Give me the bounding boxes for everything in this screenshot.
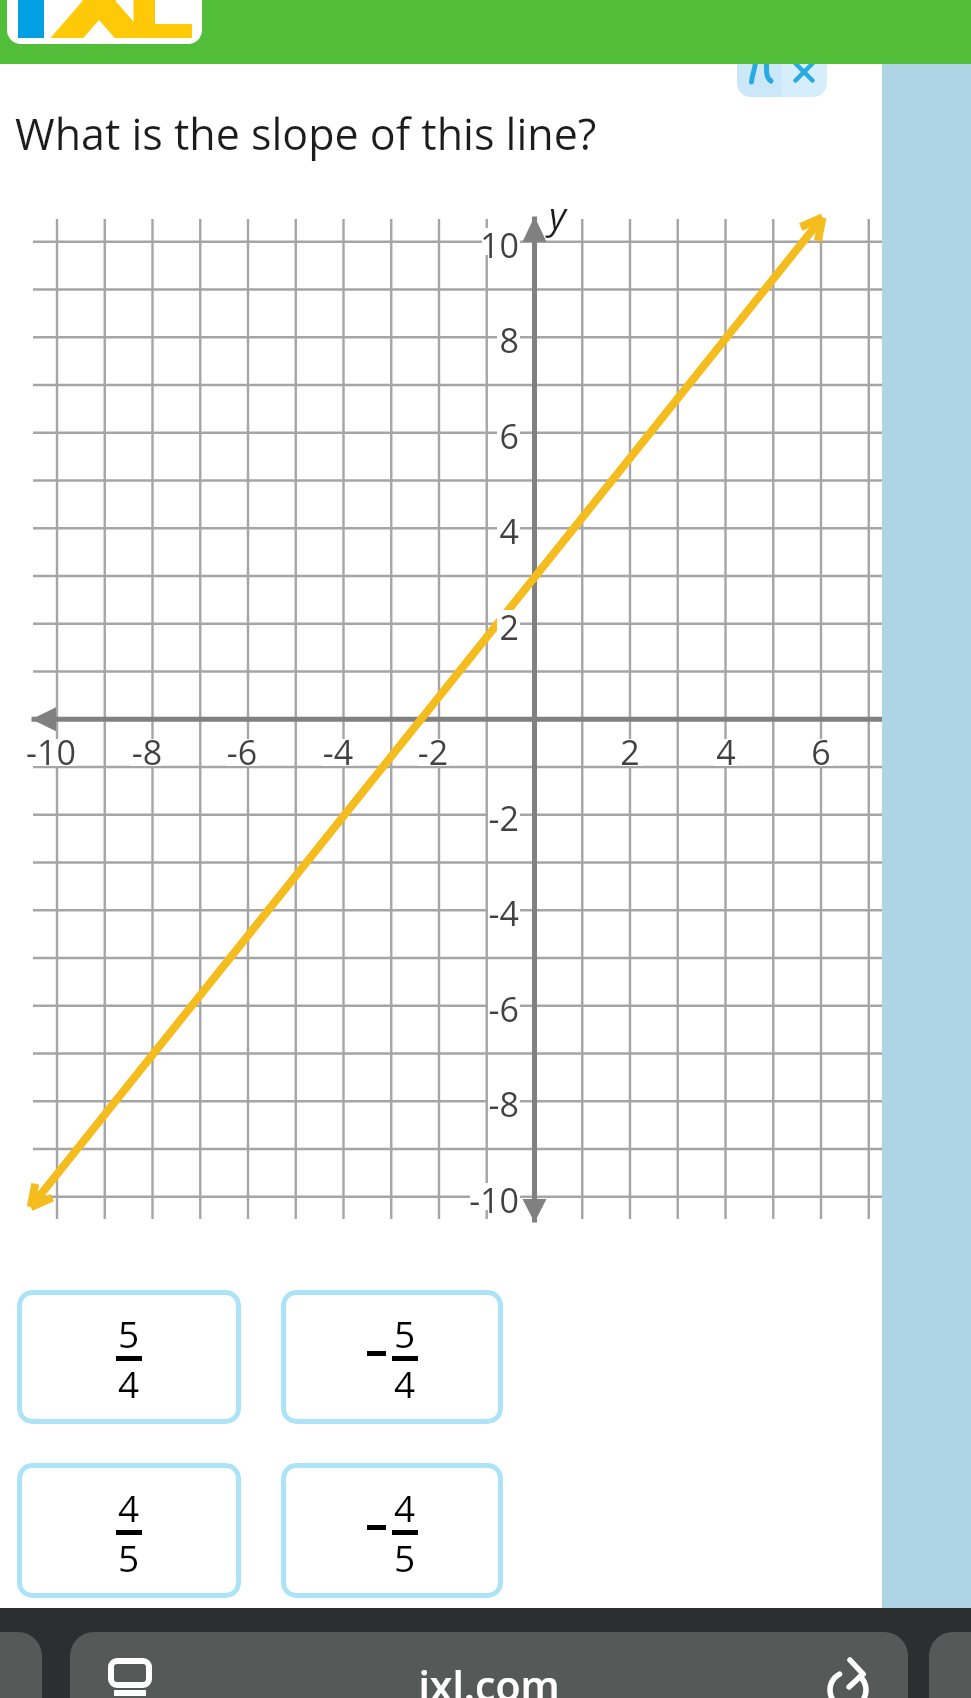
button[interactable] <box>70 1632 908 1698</box>
staticText: -4 <box>409 890 519 936</box>
staticText: 4 <box>394 1482 416 1530</box>
staticText: -8 <box>409 1081 519 1127</box>
button[interactable]: IXL home <box>7 0 202 44</box>
staticText: 5 <box>118 1308 140 1356</box>
staticText: 4 <box>681 729 771 775</box>
button[interactable]: Tabs <box>108 1658 156 1698</box>
button[interactable]: Math symbols <box>737 44 782 97</box>
staticText: 5 <box>394 1308 416 1356</box>
staticText: 5 <box>118 1532 140 1580</box>
button[interactable]: 5 <box>281 1290 503 1424</box>
staticText: -6 <box>197 729 287 775</box>
staticText: 4 <box>118 1358 140 1406</box>
button[interactable]: 4 <box>281 1463 503 1598</box>
button[interactable]: 5 <box>17 1290 241 1424</box>
staticText: -2 <box>388 729 478 775</box>
staticText: 4 <box>394 1358 416 1406</box>
button[interactable]: Close <box>782 44 827 97</box>
staticText: 6 <box>776 729 866 775</box>
staticText: 2 <box>409 604 519 650</box>
staticText: 10 <box>409 222 519 268</box>
button[interactable]: 4 <box>17 1463 241 1598</box>
staticText: 5 <box>394 1532 416 1580</box>
staticText: -6 <box>409 986 519 1032</box>
staticText: -4 <box>293 729 383 775</box>
staticText: What is the slope of this line? <box>15 104 597 163</box>
staticText: ixl.com <box>70 1657 908 1698</box>
staticText: 4 <box>409 508 519 554</box>
staticText: 2 <box>585 729 675 775</box>
staticText: -2 <box>409 795 519 841</box>
button[interactable]: Reload <box>824 1658 874 1698</box>
staticText: 6 <box>409 413 519 459</box>
staticText: y <box>549 189 567 239</box>
staticText: 4 <box>118 1482 140 1530</box>
staticText: -8 <box>102 729 192 775</box>
staticText: 8 <box>409 317 519 363</box>
staticText: -10 <box>6 729 96 775</box>
staticText: -10 <box>409 1177 519 1223</box>
